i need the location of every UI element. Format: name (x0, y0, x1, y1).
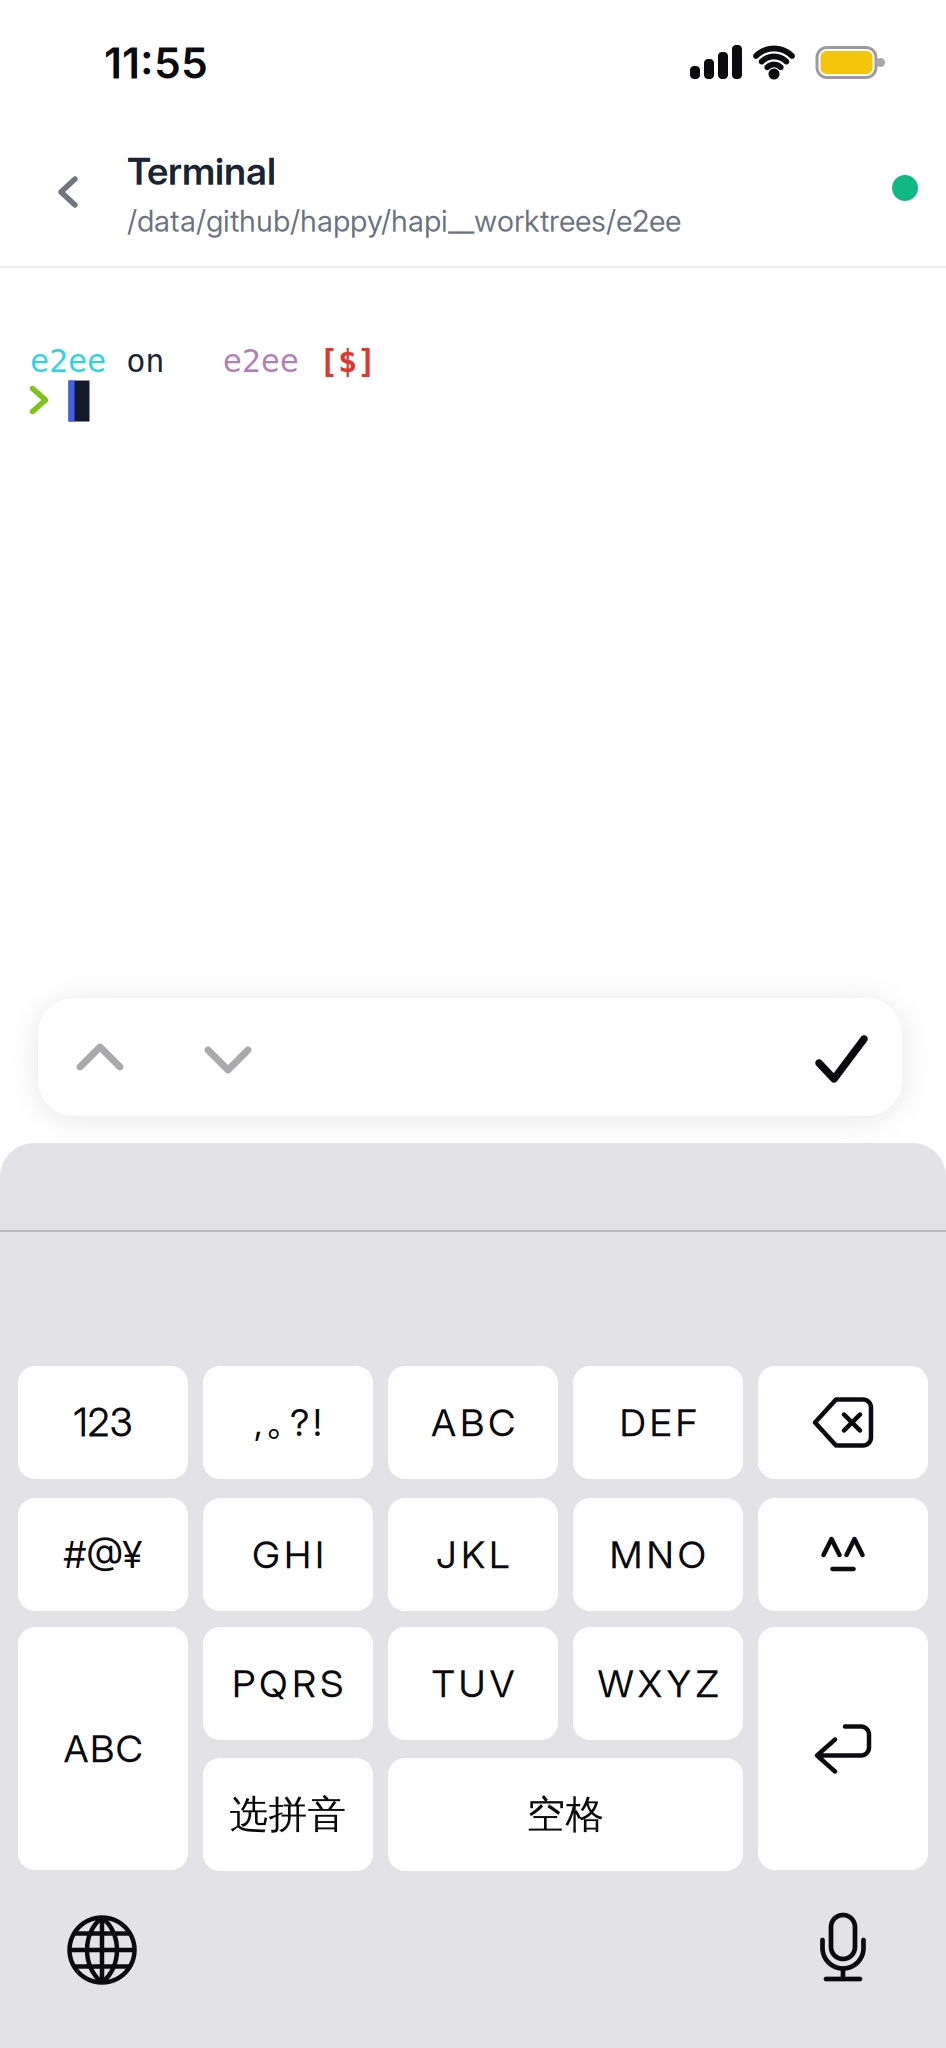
button[interactable]: Back (39, 157, 97, 227)
staticText: e2ee (223, 342, 299, 380)
staticText: [$] (319, 342, 376, 380)
staticText: e2ee (30, 342, 106, 380)
staticText: ABC (63, 1725, 142, 1771)
button[interactable]: 123 (18, 1366, 188, 1479)
staticText: DEF (619, 1399, 696, 1445)
button[interactable]: 选拼音 (203, 1758, 373, 1871)
staticText: #@¥ (63, 1532, 142, 1577)
button[interactable]: DEF (573, 1366, 743, 1479)
staticText: 空格 (526, 1790, 604, 1839)
button[interactable]: ABC (18, 1627, 188, 1870)
staticText: ABC (431, 1399, 515, 1445)
staticText: TUV (431, 1660, 514, 1706)
button[interactable]: Done (799, 1018, 885, 1100)
button[interactable]: WXYZ (573, 1627, 743, 1740)
staticText: 123 (73, 1399, 132, 1446)
staticText: 选拼音 (229, 1790, 346, 1839)
button[interactable]: ABC (388, 1366, 558, 1479)
button[interactable]: JKL (388, 1498, 558, 1611)
button[interactable]: MNO (573, 1498, 743, 1611)
button[interactable]: PQRS (203, 1627, 373, 1740)
staticText: GHI (252, 1531, 324, 1577)
staticText: MNO (609, 1531, 706, 1577)
button[interactable] (758, 1498, 928, 1611)
button[interactable]: ,｡?! (203, 1366, 373, 1479)
button[interactable]: GHI (203, 1498, 373, 1611)
staticText: Terminal (127, 148, 276, 194)
button[interactable]: Next keyboard (53, 1901, 151, 1999)
staticText: on (126, 342, 164, 380)
staticText: 11:55 (104, 37, 208, 89)
button[interactable]: Previous (60, 1027, 140, 1087)
button[interactable]: 空格 (388, 1758, 743, 1871)
staticText: WXYZ (597, 1660, 718, 1706)
button[interactable]: #@¥ (18, 1498, 188, 1611)
button[interactable] (758, 1627, 928, 1870)
button[interactable]: Next (188, 1030, 268, 1090)
staticText: PQRS (232, 1660, 344, 1706)
staticText: JKL (436, 1531, 510, 1577)
button[interactable] (758, 1366, 928, 1479)
button[interactable]: TUV (388, 1627, 558, 1740)
staticText: /data/github/happy/hapi__worktrees/e2ee (127, 203, 681, 239)
button[interactable]: Dictation (804, 1899, 882, 1997)
staticText: ,｡?! (254, 1400, 322, 1445)
